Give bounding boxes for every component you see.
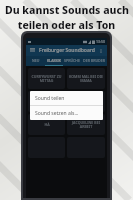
- staticText: HÄ: [44, 122, 50, 127]
- staticText: Freiburger Soundboard: [39, 47, 95, 54]
- staticText: Du kannst Sounds auch: [5, 3, 129, 17]
- staticText: CURRYWURST ZU MITTAG: [30, 74, 63, 84]
- staticText: GUCK NICHT SO DUMM: [69, 97, 103, 107]
- staticText: JACQUELINE BEI ARBEIT: [69, 120, 103, 130]
- button[interactable]: SPRÜCHE: [63, 56, 81, 65]
- button[interactable]: Menu: [29, 47, 36, 54]
- button[interactable]: CURRYWURST ZU MITTAG: [28, 68, 65, 89]
- staticText: Sound teilen: [35, 95, 65, 102]
- staticText: DER BRUDER: [83, 58, 106, 63]
- staticText: KLASSIK: [47, 58, 62, 63]
- button[interactable]: KLASSIK: [45, 56, 63, 65]
- button[interactable]: HÄ: [28, 114, 65, 135]
- button[interactable]: More options: [97, 47, 104, 54]
- button[interactable]: KLARE FRESSKÜSTEN: [28, 91, 65, 112]
- button[interactable]: DER BRUDER: [81, 56, 107, 65]
- button[interactable]: NEU: [26, 56, 45, 65]
- staticText: Sound setzen als...: [35, 110, 79, 117]
- button[interactable]: KOMM MAL BEI DIE MAMA: [67, 68, 105, 89]
- button[interactable]: JACQUELINE BEI ARBEIT: [67, 114, 105, 135]
- staticText: SPRÜCHE: [64, 58, 81, 63]
- staticText: 13:50: [96, 39, 105, 44]
- button[interactable]: Sound teilen: [30, 91, 103, 105]
- staticText: teilen oder als Ton setzen !: [3, 18, 130, 44]
- button[interactable]: Sound setzen als...: [30, 106, 103, 120]
- staticText: KLARE FRESSKÜSTEN: [30, 97, 63, 107]
- staticText: KOMM MAL BEI DIE MAMA: [69, 74, 103, 84]
- staticText: NEU: [32, 58, 40, 63]
- button[interactable]: GUCK NICHT SO DUMM: [67, 91, 105, 112]
